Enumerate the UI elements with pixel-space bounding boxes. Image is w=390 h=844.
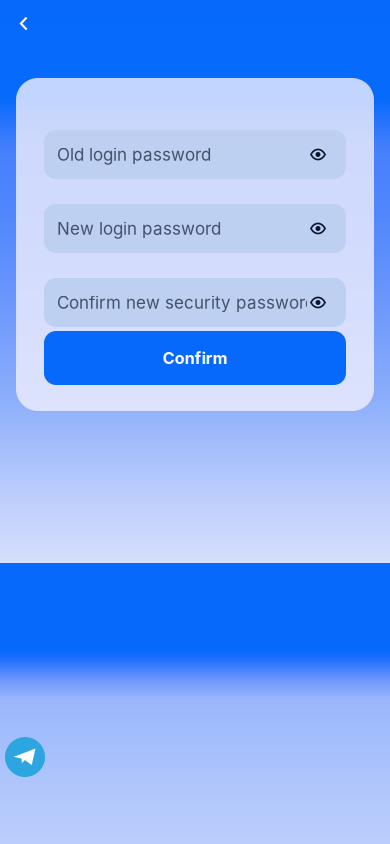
staticText: Confirm new security password — [57, 292, 315, 313]
button[interactable]: Telegram — [5, 737, 45, 777]
button[interactable]: Show password — [301, 204, 335, 253]
button[interactable]: Show password — [301, 278, 335, 327]
button[interactable]: Confirm — [44, 331, 346, 385]
staticText: Confirm — [162, 348, 227, 368]
button[interactable]: Back — [3, 2, 45, 42]
staticText: New login password — [57, 218, 221, 239]
button[interactable]: Show password — [301, 130, 335, 179]
staticText: Old login password — [57, 144, 211, 165]
